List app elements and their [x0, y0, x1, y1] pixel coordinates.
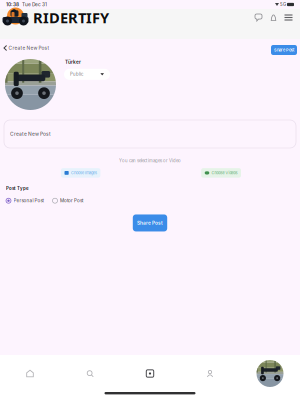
staticText: Choose Videos: [211, 171, 237, 175]
staticText: Tue Dec 31: [19, 2, 47, 7]
staticText: Share Post: [274, 48, 294, 52]
staticText: Motor Post: [60, 198, 83, 203]
button[interactable]: Messages: [251, 9, 266, 26]
staticText: Türker: [65, 59, 81, 65]
button[interactable]: New Post: [120, 355, 180, 392]
button[interactable]: Menu: [281, 9, 296, 26]
button[interactable]: Choose Videos: [201, 168, 241, 178]
staticText: Personal Post: [13, 198, 43, 203]
staticText: Public: [70, 72, 83, 77]
staticText: Create New Post: [9, 45, 50, 51]
staticText: You can select images or Video: [119, 158, 181, 163]
staticText: Share Post: [137, 220, 163, 226]
button[interactable]: Create New Post: [0, 41, 50, 55]
staticText: Post Type: [6, 186, 29, 191]
button[interactable]: Public: [64, 69, 110, 80]
button[interactable]: Notifications: [266, 9, 281, 26]
button[interactable]: Share Post: [133, 214, 167, 231]
staticText: Create New Post: [10, 131, 51, 137]
button[interactable]: Account: [240, 355, 300, 392]
button[interactable]: Home: [0, 355, 60, 392]
button[interactable]: Motor Post: [52, 198, 83, 203]
staticText: Choose Images: [71, 171, 97, 175]
button[interactable]: Personal Post: [6, 198, 43, 203]
staticText: 5G: [279, 2, 287, 7]
button[interactable]: Search: [60, 355, 120, 392]
button[interactable]: Profile: [180, 355, 240, 392]
button[interactable]: Choose Images: [61, 168, 100, 178]
button[interactable]: Share Post: [271, 45, 297, 55]
staticText: 10:38: [6, 2, 19, 7]
staticText: RIDERTIFY: [33, 8, 109, 27]
